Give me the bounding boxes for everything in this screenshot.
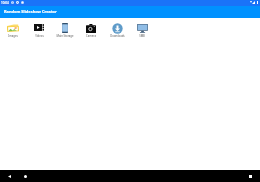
button[interactable]: SMB	[129, 18, 155, 38]
staticText: SMB	[139, 34, 145, 38]
staticText: Videos	[35, 34, 44, 38]
staticText: Images	[8, 34, 18, 38]
staticText: Random Slideshow Creator	[4, 9, 57, 14]
staticText: Main Storage	[56, 34, 74, 38]
staticText: 10:04	[1, 1, 9, 5]
button[interactable]: Downloads	[104, 18, 130, 38]
button[interactable]: Home	[20, 171, 31, 182]
button[interactable]: Main Storage	[52, 18, 78, 38]
button[interactable]: Back	[4, 171, 15, 182]
button[interactable]: Videos	[26, 18, 52, 38]
button[interactable]: Recents	[245, 171, 256, 182]
button[interactable]: Camera	[78, 18, 104, 38]
staticText: Downloads	[110, 34, 125, 38]
button[interactable]: Images	[0, 18, 26, 38]
staticText: Camera	[86, 34, 96, 38]
